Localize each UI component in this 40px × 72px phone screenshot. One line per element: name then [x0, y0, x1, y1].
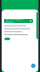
staticText: Lorem ipsum dolor	[6, 17, 23, 25]
button[interactable]	[4, 38, 10, 40]
button[interactable]: Compose	[31, 64, 35, 68]
button[interactable]: Lorem ipsum dolor	[4, 19, 33, 23]
